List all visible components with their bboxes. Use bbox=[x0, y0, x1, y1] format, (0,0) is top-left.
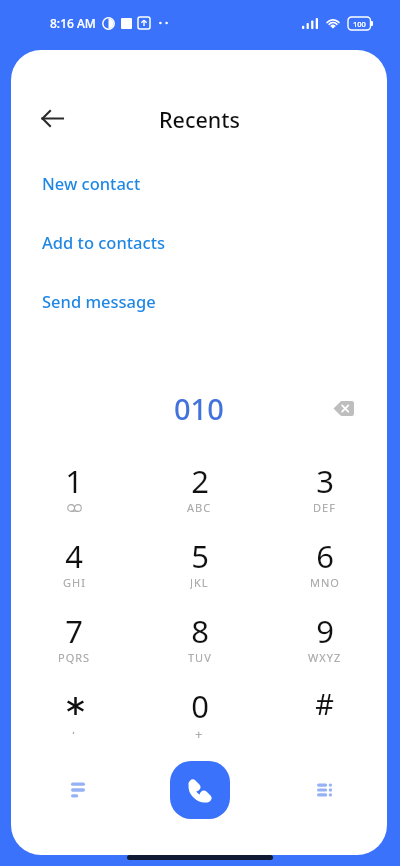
staticText: , bbox=[72, 720, 76, 734]
staticText: 4 bbox=[65, 535, 83, 577]
staticText: JKL bbox=[190, 575, 209, 589]
staticText: 6 bbox=[316, 535, 334, 577]
button[interactable]: 4 bbox=[11, 530, 137, 605]
staticText: MNO bbox=[310, 575, 340, 589]
staticText: 1 bbox=[65, 460, 83, 502]
button[interactable]: Send message bbox=[11, 281, 387, 321]
staticText: # bbox=[315, 684, 334, 723]
staticText: PQRS bbox=[58, 650, 91, 664]
button[interactable]: Call bbox=[170, 761, 230, 819]
button[interactable]: 5 bbox=[137, 530, 262, 605]
staticText: 0 bbox=[191, 685, 209, 727]
staticText: 5 bbox=[191, 535, 209, 577]
button[interactable]: Back bbox=[32, 98, 72, 138]
staticText: 3 bbox=[316, 460, 334, 502]
button[interactable]: 1 bbox=[11, 455, 137, 530]
staticText: 7 bbox=[65, 610, 83, 652]
staticText: + bbox=[195, 725, 204, 739]
button[interactable]: Keypad bbox=[11, 740, 137, 840]
staticText: 8 bbox=[191, 610, 209, 652]
staticText: DEF bbox=[313, 500, 336, 514]
staticText: GHI bbox=[63, 575, 86, 589]
button[interactable]: Backspace bbox=[323, 388, 363, 428]
button[interactable]: Add to contacts bbox=[11, 222, 387, 262]
button[interactable]: 7 bbox=[11, 605, 137, 680]
staticText: 100 bbox=[353, 19, 366, 29]
button[interactable]: Call log bbox=[262, 740, 387, 840]
button[interactable]: New contact bbox=[11, 163, 387, 203]
staticText: TUV bbox=[188, 650, 212, 664]
button[interactable]: 0 bbox=[137, 680, 262, 755]
staticText: WXYZ bbox=[308, 650, 342, 664]
staticText: Recents bbox=[159, 105, 240, 134]
button[interactable]: 2 bbox=[137, 455, 262, 530]
staticText: Add to contacts bbox=[42, 231, 165, 253]
staticText: 010 bbox=[174, 389, 224, 428]
button[interactable]: # bbox=[262, 680, 387, 755]
button[interactable]: 6 bbox=[262, 530, 387, 605]
button[interactable]: 3 bbox=[262, 455, 387, 530]
staticText: 8:16 AM bbox=[50, 15, 96, 31]
staticText: 2 bbox=[191, 460, 209, 502]
staticText: ABC bbox=[187, 500, 212, 514]
button[interactable]: , bbox=[11, 680, 137, 755]
button[interactable]: 8 bbox=[137, 605, 262, 680]
button[interactable]: 9 bbox=[262, 605, 387, 680]
staticText: 9 bbox=[316, 610, 334, 652]
staticText: Send message bbox=[42, 290, 156, 312]
staticText: New contact bbox=[42, 172, 141, 194]
